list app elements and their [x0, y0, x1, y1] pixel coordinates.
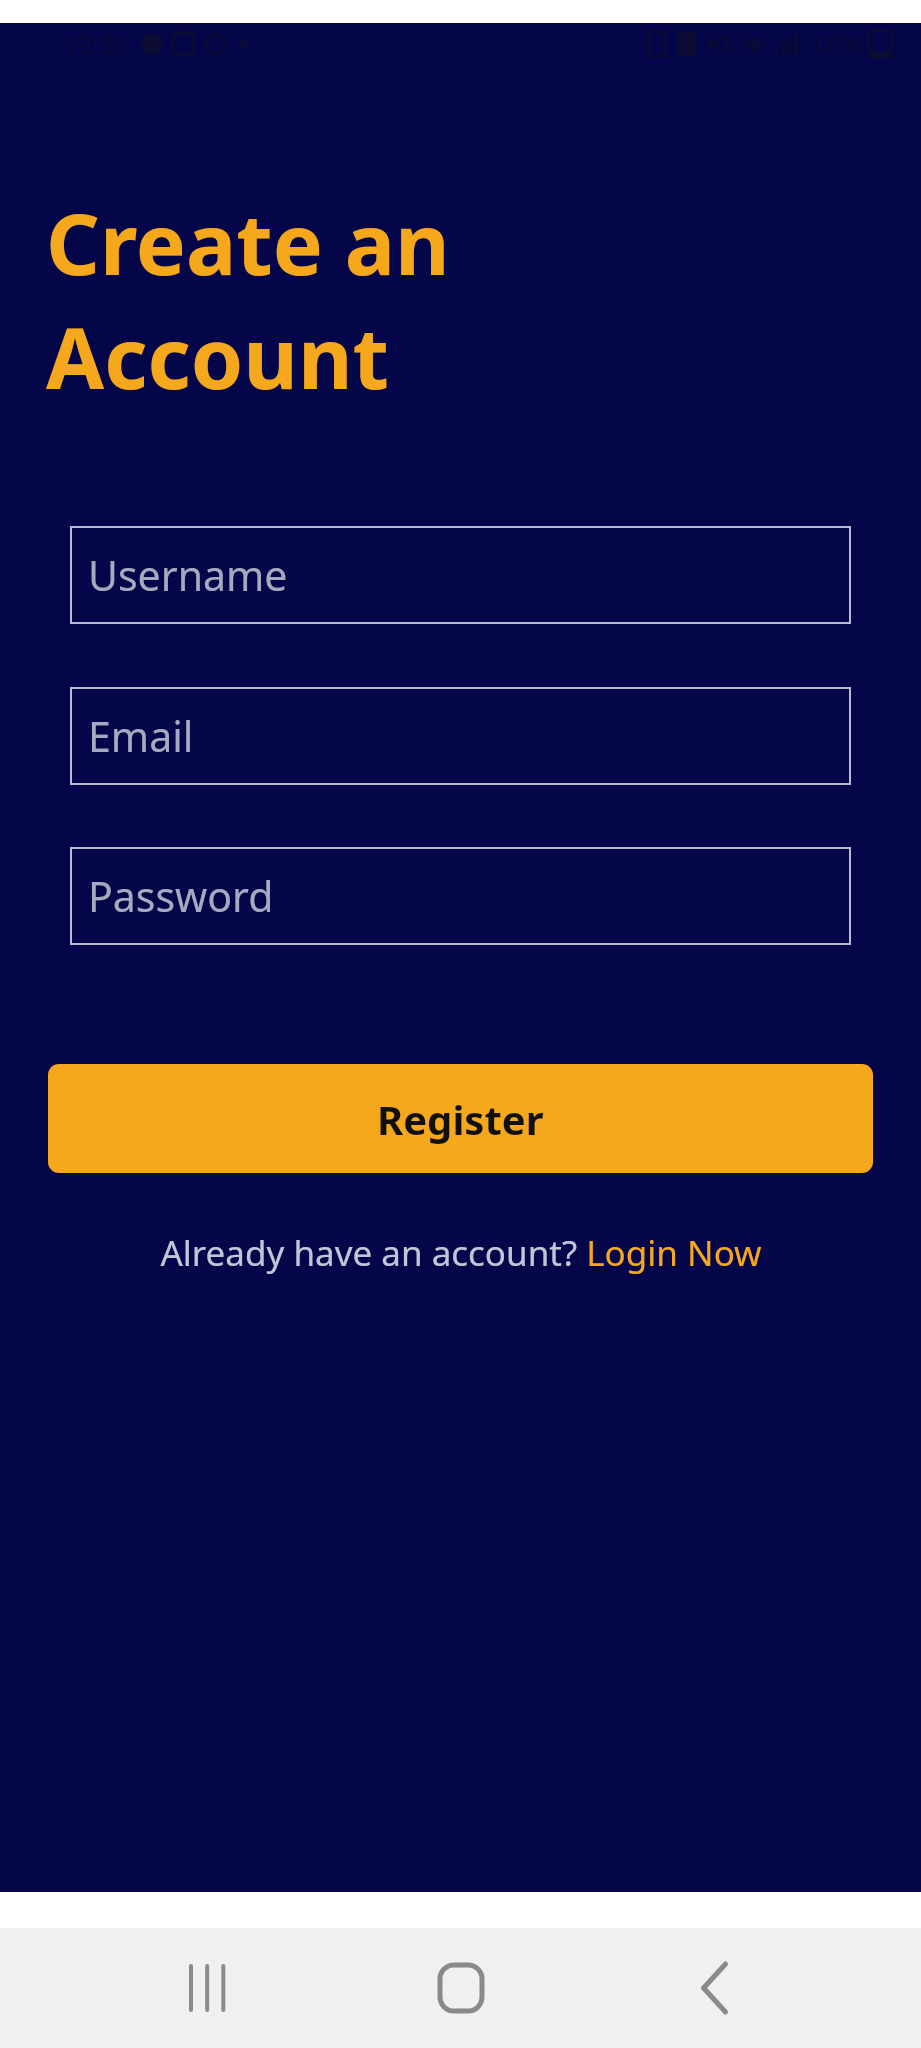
button[interactable]: Register [48, 1064, 873, 1173]
staticText: Create an [46, 185, 450, 299]
staticText: 16% [811, 26, 863, 61]
button[interactable]: Email [70, 687, 851, 785]
button[interactable]: Recent apps [158, 1940, 254, 2036]
staticText: Username [88, 547, 288, 603]
staticText: Register [377, 1092, 544, 1146]
staticText: Account [46, 299, 389, 413]
staticText: Password [88, 868, 274, 924]
button[interactable]: Back [667, 1940, 763, 2036]
button[interactable]: Username [70, 526, 851, 624]
button[interactable]: Password [70, 847, 851, 945]
staticText: 19:36 [62, 26, 129, 61]
staticText: Already have an account? Login Now [160, 1229, 762, 1277]
button[interactable]: Home [413, 1940, 509, 2036]
button[interactable]: Already have an account? Login Now [152, 1223, 770, 1283]
staticText: Email [88, 708, 194, 764]
